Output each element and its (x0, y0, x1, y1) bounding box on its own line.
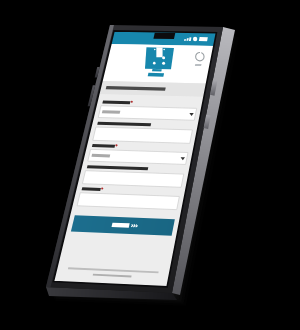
button[interactable]: Message to appear on your statement (99, 112, 192, 131)
button[interactable]: To Account, please select (96, 140, 189, 157)
button[interactable]: Log out (185, 40, 209, 64)
button[interactable]: Continue (72, 224, 169, 244)
button[interactable]: Message to appear on receiver statement (93, 167, 186, 186)
button[interactable]: Amount (90, 196, 183, 215)
button[interactable]: From Account, please select (101, 85, 194, 102)
